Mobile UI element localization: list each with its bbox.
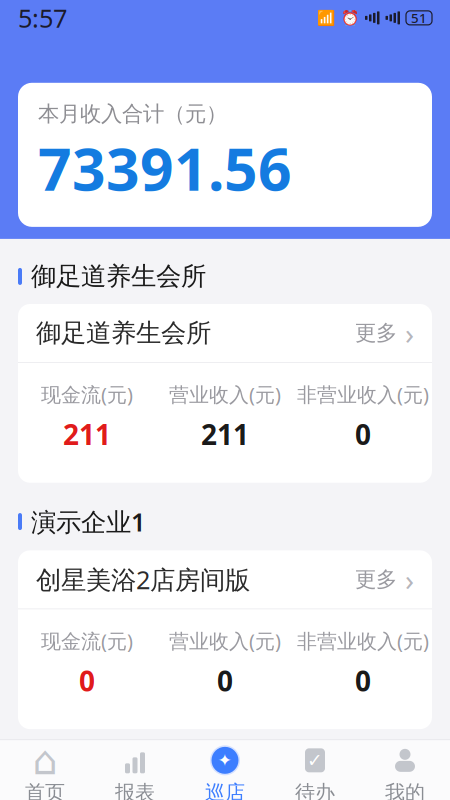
button[interactable]: ✓ (270, 739, 360, 800)
button[interactable]: ✦ (180, 739, 270, 800)
staticText: 5:57 (18, 1, 67, 35)
staticText: › (405, 313, 414, 352)
staticText: ✓ (307, 750, 323, 771)
staticText: 0 (355, 416, 371, 453)
staticText: 本月收入合计（元） (38, 101, 227, 127)
staticText: 营业收入(元) (169, 627, 281, 654)
staticText: 现金流(元) (41, 381, 133, 408)
staticText: 更多 (355, 566, 397, 592)
staticText: 我的 (385, 780, 425, 800)
staticText: ⌂ (32, 738, 57, 783)
staticText: 0 (355, 662, 371, 699)
staticText: 演示企业1 (31, 505, 145, 538)
staticText: 现金流(元) (41, 627, 133, 654)
staticText: 51 (411, 9, 427, 27)
staticText: 创星美浴2店房间版 (36, 563, 250, 596)
staticText: 首页 (25, 780, 65, 800)
button[interactable]: 御足道养生会所 (18, 304, 432, 362)
staticText: 御足道养生会所 (31, 261, 206, 292)
staticText: ✦ (217, 750, 232, 770)
staticText: 0 (79, 662, 95, 699)
staticText: 非营业收入(元) (297, 627, 429, 654)
button[interactable]: ⌂ (0, 739, 90, 800)
staticText: › (405, 560, 414, 599)
staticText: 73391.56 (38, 129, 292, 207)
staticText: 211 (201, 416, 249, 453)
button[interactable]: 我的 (360, 739, 450, 800)
staticText: 211 (63, 416, 111, 453)
staticText: ⏰ (341, 9, 359, 26)
staticText: 巡店 (205, 780, 245, 800)
staticText: 营业收入(元) (169, 381, 281, 408)
staticText: 御足道养生会所 (36, 317, 211, 348)
staticText: 0 (217, 662, 233, 699)
staticText: 待办 (295, 780, 335, 800)
staticText: 📶 (317, 9, 335, 26)
staticText: 更多 (355, 320, 397, 346)
button[interactable]: 报表 (90, 739, 180, 800)
button[interactable]: 创星美浴2店房间版 (18, 550, 432, 608)
staticText: 非营业收入(元) (297, 381, 429, 408)
staticText: 报表 (115, 780, 155, 800)
